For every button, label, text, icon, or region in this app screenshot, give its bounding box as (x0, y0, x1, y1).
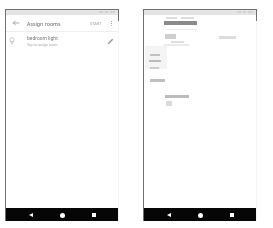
button[interactable]: Back (25, 209, 37, 221)
staticText: bedroom light (27, 35, 58, 41)
staticText: START (90, 21, 102, 26)
button[interactable]: Home (194, 209, 206, 221)
staticText: Tap to assign room (27, 42, 58, 47)
button[interactable]: Back (163, 209, 175, 221)
button[interactable]: Navigate up (10, 17, 22, 29)
button[interactable]: Home (56, 209, 68, 221)
button[interactable]: More options (106, 18, 117, 29)
button[interactable]: bedroom light (5, 32, 119, 50)
button[interactable]: Edit (102, 32, 119, 50)
button[interactable]: Recent apps (226, 209, 238, 221)
button[interactable]: Recent apps (88, 209, 100, 221)
staticText: Assign rooms (27, 20, 61, 27)
button[interactable]: START (89, 18, 103, 29)
